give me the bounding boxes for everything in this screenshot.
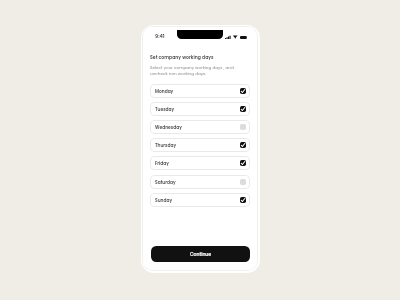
other: Thursday selected bbox=[240, 142, 246, 148]
other: Tuesday selected bbox=[240, 106, 246, 112]
staticText: Thursday bbox=[155, 142, 177, 148]
staticText: Continue bbox=[190, 251, 212, 257]
staticText: Saturday bbox=[155, 179, 176, 185]
staticText: uncheck non working days. bbox=[150, 71, 207, 77]
staticText: Tuesday bbox=[155, 106, 175, 112]
staticText: Set company working days bbox=[150, 54, 214, 60]
other: Monday selected bbox=[240, 88, 246, 94]
staticText: Select your company working days , and bbox=[150, 65, 234, 71]
staticText: 9:41 bbox=[155, 33, 165, 40]
staticText: Friday bbox=[155, 160, 169, 166]
other: Sunday selected bbox=[240, 197, 246, 203]
staticText: Wednesday bbox=[155, 124, 182, 130]
staticText: Sunday bbox=[155, 197, 173, 203]
button[interactable]: Monday bbox=[150, 84, 250, 98]
staticText: Monday bbox=[155, 88, 174, 94]
button[interactable]: Saturday bbox=[150, 175, 250, 189]
button[interactable]: Sunday bbox=[150, 193, 250, 207]
other: Friday selected bbox=[240, 160, 246, 166]
other: Wednesday not selected bbox=[240, 124, 246, 130]
button[interactable]: Tuesday bbox=[150, 102, 250, 116]
button[interactable]: Wednesday bbox=[150, 120, 250, 134]
other: Saturday not selected bbox=[240, 179, 246, 185]
button[interactable]: Continue bbox=[151, 246, 250, 262]
button[interactable]: Thursday bbox=[150, 138, 250, 152]
button[interactable]: Friday bbox=[150, 156, 250, 170]
